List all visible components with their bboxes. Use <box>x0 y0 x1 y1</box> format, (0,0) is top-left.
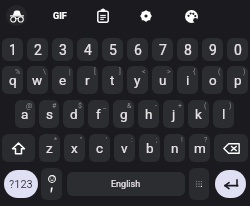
staticText: ? <box>204 136 208 144</box>
staticText: * <box>54 136 58 144</box>
button[interactable]: m <box>189 134 210 162</box>
button[interactable]: y <box>127 66 148 94</box>
button[interactable]: x <box>64 134 85 162</box>
staticText: m <box>194 140 206 156</box>
staticText: % <box>15 68 21 76</box>
staticText: 6 <box>134 42 142 58</box>
staticText: r <box>85 72 90 88</box>
staticText: s <box>46 106 53 122</box>
staticText: y <box>134 72 141 88</box>
button[interactable]: p <box>227 66 248 94</box>
staticText: @ <box>26 102 33 110</box>
staticText: 2 <box>34 42 42 58</box>
button[interactable]: Shift <box>2 134 35 162</box>
staticText: 1 <box>9 42 17 58</box>
staticText: z <box>46 140 53 156</box>
staticText: v <box>121 140 128 156</box>
button[interactable]: z <box>39 134 60 162</box>
button[interactable]: h <box>138 100 159 128</box>
button[interactable]: English <box>67 172 185 196</box>
button[interactable]: n <box>164 134 185 162</box>
staticText: q <box>9 72 17 88</box>
staticText: 0 <box>234 42 242 58</box>
staticText: a <box>21 106 29 122</box>
staticText: ) <box>243 68 246 76</box>
button[interactable]: o <box>202 66 223 94</box>
button[interactable]: l <box>213 100 234 128</box>
staticText: g <box>120 106 128 122</box>
staticText: & <box>127 102 132 110</box>
button[interactable]: 6 <box>127 38 148 61</box>
button[interactable]: q <box>2 66 23 94</box>
button[interactable]: 2 <box>27 38 48 61</box>
button[interactable]: 5 <box>102 38 123 61</box>
button[interactable]: 0 <box>227 38 248 61</box>
staticText: ; <box>156 136 158 144</box>
staticText: n <box>171 140 179 156</box>
staticText: k <box>195 106 202 122</box>
button[interactable]: ?123 <box>4 170 38 198</box>
button[interactable]: u <box>152 66 173 94</box>
staticText: t <box>110 72 115 88</box>
button[interactable]: Enter <box>215 170 246 198</box>
button[interactable]: Period <box>189 168 209 200</box>
button[interactable]: d <box>63 100 84 128</box>
button[interactable]: a <box>15 100 35 128</box>
staticText: ) <box>229 102 232 110</box>
staticText: l <box>222 106 226 122</box>
staticText: 5 <box>109 42 117 58</box>
button[interactable]: c <box>89 134 110 162</box>
button[interactable]: j <box>163 100 184 128</box>
staticText: GIF <box>53 11 67 22</box>
staticText: o <box>209 72 217 88</box>
staticText: b <box>146 140 154 156</box>
button[interactable]: g <box>113 100 134 128</box>
staticText: h <box>145 106 153 122</box>
staticText: ' <box>106 136 108 144</box>
button[interactable]: r <box>77 66 98 94</box>
staticText: w <box>32 72 43 88</box>
button[interactable]: 9 <box>202 38 223 61</box>
staticText: 3 <box>59 42 67 58</box>
staticText: 4 <box>84 42 92 58</box>
button[interactable]: v <box>114 134 135 162</box>
staticText: 8 <box>184 42 192 58</box>
staticText: ?123 <box>9 178 33 191</box>
button[interactable]: s <box>39 100 59 128</box>
staticText: " <box>80 136 83 144</box>
button[interactable]: Backspace <box>214 134 248 162</box>
staticText: | <box>69 68 71 76</box>
staticText: 7 <box>159 42 167 58</box>
button[interactable]: w <box>27 66 48 94</box>
staticText: # <box>52 102 57 110</box>
button[interactable]: Emoji <box>41 168 62 200</box>
button[interactable]: 8 <box>177 38 198 61</box>
staticText: j <box>172 106 176 122</box>
button[interactable]: f <box>88 100 109 128</box>
button[interactable]: b <box>139 134 160 162</box>
staticText: d <box>70 106 78 122</box>
button[interactable]: Themes <box>180 5 202 27</box>
staticText: $ <box>78 102 82 110</box>
staticText: c <box>96 140 104 156</box>
button[interactable]: Clipboard <box>92 5 114 27</box>
staticText: p <box>234 72 242 88</box>
button[interactable]: t <box>102 66 123 94</box>
button[interactable]: i <box>177 66 198 94</box>
staticText: \ <box>43 68 46 76</box>
button[interactable]: 1 <box>2 38 23 61</box>
button[interactable]: k <box>188 100 209 128</box>
button[interactable]: 3 <box>52 38 73 61</box>
button[interactable]: e <box>52 66 73 94</box>
staticText: English <box>111 179 141 190</box>
button[interactable]: GIF <box>49 5 71 27</box>
staticText: i <box>186 72 190 88</box>
staticText: ! <box>181 136 183 144</box>
staticText: ( <box>204 102 207 110</box>
staticText: 9 <box>209 42 217 58</box>
button[interactable]: Incognito mode <box>6 5 27 26</box>
button[interactable]: 7 <box>152 38 173 61</box>
staticText: f <box>96 106 101 122</box>
button[interactable]: Settings <box>135 5 157 27</box>
button[interactable]: 4 <box>77 38 98 61</box>
